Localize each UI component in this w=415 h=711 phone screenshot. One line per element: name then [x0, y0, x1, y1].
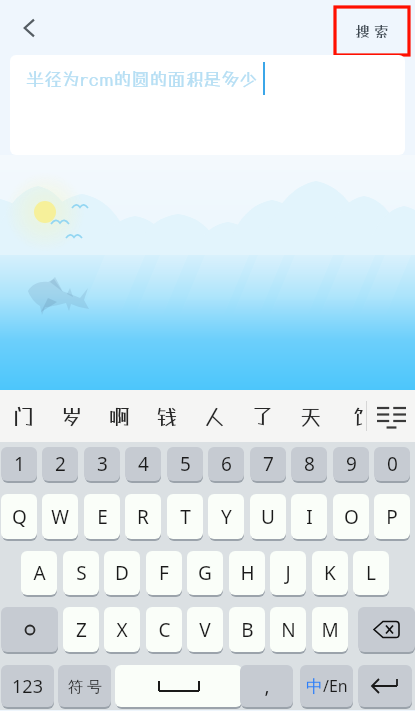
button[interactable]: 123: [1, 665, 54, 707]
staticText: E: [97, 504, 108, 530]
staticText: S: [76, 560, 87, 586]
staticText: 半径为rcm的圆的面积是多少: [26, 68, 258, 89]
button[interactable]: X: [104, 607, 140, 652]
staticText: 搜 索: [355, 22, 389, 40]
button[interactable]: Z: [63, 607, 99, 652]
staticText: 4: [138, 451, 149, 477]
staticText: 123: [12, 674, 43, 699]
button[interactable]: F: [146, 551, 182, 595]
button[interactable]: 3: [84, 447, 120, 481]
staticText: M: [321, 617, 339, 643]
button[interactable]: 天: [291, 390, 329, 442]
button[interactable]: ,: [240, 665, 293, 707]
button[interactable]: B: [229, 607, 265, 652]
button[interactable]: 人: [195, 390, 233, 442]
staticText: /En: [323, 675, 348, 697]
button[interactable]: H: [229, 551, 265, 595]
button[interactable]: 2: [42, 447, 78, 481]
button[interactable]: 0: [374, 447, 410, 481]
button[interactable]: del: [358, 607, 415, 652]
staticText: 饣: [348, 404, 369, 429]
button[interactable]: More candidates: [367, 390, 415, 442]
button[interactable]: L: [353, 551, 389, 595]
button[interactable]: W: [42, 494, 78, 539]
button[interactable]: 4: [125, 447, 161, 481]
staticText: G: [198, 560, 212, 586]
button[interactable]: P: [374, 494, 410, 539]
staticText: 9: [346, 451, 357, 477]
button[interactable]: K: [312, 551, 348, 595]
staticText: O: [344, 504, 359, 530]
staticText: 3: [97, 451, 108, 477]
staticText: H: [240, 560, 255, 586]
button[interactable]: 了: [243, 390, 281, 442]
staticText: W: [51, 504, 69, 530]
staticText: 0: [387, 451, 398, 477]
button[interactable]: space: [115, 665, 242, 707]
staticText: V: [199, 617, 211, 643]
button[interactable]: R: [125, 494, 161, 539]
staticText: 7: [263, 451, 274, 477]
staticText: 天: [300, 404, 321, 429]
button[interactable]: 9: [333, 447, 369, 481]
button[interactable]: C: [146, 607, 182, 652]
button[interactable]: cn: [300, 665, 353, 707]
staticText: 钱: [156, 404, 177, 429]
staticText: F: [159, 560, 169, 586]
button[interactable]: 半径为rcm的圆的面积是多少: [10, 55, 405, 155]
staticText: T: [180, 504, 191, 530]
staticText: 5: [180, 451, 191, 477]
staticText: 6: [221, 451, 232, 477]
staticText: C: [158, 617, 171, 643]
staticText: J: [285, 560, 291, 586]
button[interactable]: shift: [1, 607, 58, 652]
button[interactable]: 门: [4, 390, 42, 442]
button[interactable]: 啊: [100, 390, 138, 442]
button[interactable]: Y: [208, 494, 244, 539]
staticText: 符 号: [68, 676, 102, 696]
button[interactable]: 7: [250, 447, 286, 481]
button[interactable]: Q: [1, 494, 37, 539]
staticText: ,: [264, 673, 270, 699]
staticText: 门: [13, 404, 34, 429]
staticText: 8: [304, 451, 315, 477]
button[interactable]: enter: [358, 665, 412, 707]
staticText: X: [116, 617, 128, 643]
button[interactable]: 搜 索: [335, 7, 409, 55]
staticText: 2: [55, 451, 66, 477]
button[interactable]: 饣: [339, 390, 377, 442]
button[interactable]: M: [312, 607, 348, 652]
staticText: L: [366, 560, 376, 586]
button[interactable]: 符 号: [58, 665, 111, 707]
button[interactable]: I: [291, 494, 327, 539]
button[interactable]: Back: [10, 8, 50, 48]
button[interactable]: 5: [167, 447, 203, 481]
staticText: U: [261, 504, 275, 530]
staticText: K: [324, 560, 336, 586]
staticText: 啊: [109, 404, 130, 429]
staticText: I: [306, 504, 313, 530]
staticText: 1: [14, 451, 25, 477]
button[interactable]: E: [84, 494, 120, 539]
button[interactable]: O: [333, 494, 369, 539]
staticText: A: [33, 560, 46, 586]
button[interactable]: J: [270, 551, 306, 595]
button[interactable]: N: [270, 607, 306, 652]
button[interactable]: A: [21, 551, 57, 595]
button[interactable]: V: [187, 607, 223, 652]
staticText: Q: [12, 504, 27, 530]
staticText: 岁: [61, 404, 82, 429]
staticText: B: [241, 617, 254, 643]
button[interactable]: 岁: [52, 390, 90, 442]
button[interactable]: 1: [1, 447, 37, 481]
button[interactable]: D: [104, 551, 140, 595]
button[interactable]: T: [167, 494, 203, 539]
button[interactable]: 钱: [147, 390, 185, 442]
button[interactable]: 6: [208, 447, 244, 481]
button[interactable]: U: [250, 494, 286, 539]
staticText: R: [137, 504, 149, 530]
button[interactable]: G: [187, 551, 223, 595]
button[interactable]: 8: [291, 447, 327, 481]
button[interactable]: S: [63, 551, 99, 595]
staticText: Z: [76, 617, 87, 643]
